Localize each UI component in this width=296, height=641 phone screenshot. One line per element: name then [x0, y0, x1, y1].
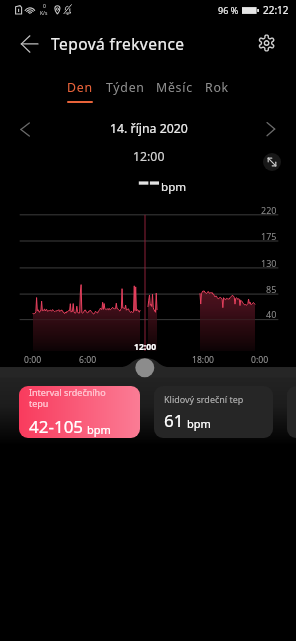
staticText: 40	[266, 308, 277, 320]
button[interactable]	[287, 386, 296, 438]
button[interactable]: Previous day	[13, 117, 37, 141]
button[interactable]: Rok	[194, 79, 240, 106]
staticText: 0:00	[251, 354, 269, 366]
button[interactable]: Next day	[259, 117, 283, 141]
button[interactable]: Settings	[253, 30, 281, 58]
staticText: bpm	[87, 422, 111, 437]
staticText: 130	[261, 257, 277, 269]
staticText: 12:00	[134, 341, 157, 353]
staticText: 42-105	[29, 415, 84, 438]
staticText: 61	[164, 409, 184, 432]
staticText: 85	[266, 283, 277, 295]
staticText: 14. října 2020	[110, 120, 188, 137]
staticText: K/s	[40, 10, 48, 17]
button[interactable]: Back	[16, 30, 44, 58]
staticText: 22:12	[263, 3, 289, 17]
staticText: Den	[67, 79, 93, 96]
staticText: bpm	[187, 416, 211, 431]
staticText: bpm	[161, 179, 187, 195]
staticText: 175	[261, 230, 277, 242]
button[interactable]: Interval srdečního tepu	[19, 386, 140, 438]
staticText: Interval srdečního tepu	[29, 386, 106, 410]
staticText: 96 %	[218, 4, 239, 16]
button[interactable]: Expand chart	[263, 153, 281, 171]
button[interactable]: Měsíc	[151, 79, 197, 106]
staticText: 0	[43, 3, 46, 10]
staticText: 6:00	[79, 354, 97, 366]
staticText: 12:00	[133, 148, 165, 165]
staticText: 220	[261, 204, 277, 216]
staticText: 18:00	[192, 354, 214, 366]
staticText: 0:00	[24, 354, 42, 366]
button[interactable]: Den	[57, 79, 103, 106]
button[interactable]: Týden	[102, 79, 148, 106]
button[interactable]: Klidový srdeční tep	[154, 386, 273, 438]
staticText: Týden	[106, 79, 145, 96]
staticText: Klidový srdeční tep	[164, 393, 244, 405]
staticText: Rok	[205, 79, 229, 96]
staticText: Tepová frekvence	[51, 33, 185, 54]
staticText: Měsíc	[156, 79, 193, 96]
